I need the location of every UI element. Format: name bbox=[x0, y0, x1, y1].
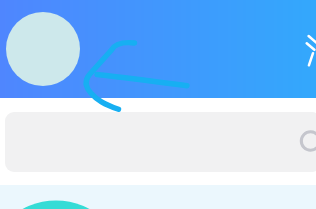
button[interactable]: Profile photo bbox=[6, 12, 80, 86]
button[interactable]: Notifications bbox=[300, 30, 316, 70]
button[interactable] bbox=[5, 112, 316, 172]
